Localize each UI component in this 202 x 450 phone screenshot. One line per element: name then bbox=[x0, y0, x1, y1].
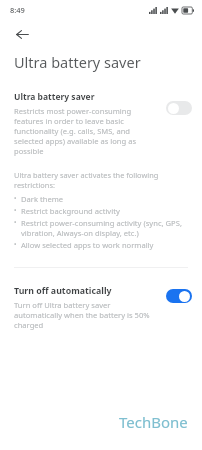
staticText: Turn off automatically bbox=[14, 285, 112, 297]
staticText: Dark theme bbox=[21, 194, 64, 204]
staticText: Ultra battery saver bbox=[14, 91, 95, 103]
staticText: Restrict background activity bbox=[21, 206, 120, 216]
staticText: 8:49 bbox=[10, 5, 25, 15]
staticText: Restricts most power-consuming features … bbox=[14, 106, 160, 156]
staticText: • bbox=[14, 194, 21, 203]
staticText: Ultra battery saver activates the follow… bbox=[14, 170, 190, 190]
button[interactable]: Turn off automatically bbox=[0, 285, 202, 330]
staticText: Ultra battery saver bbox=[14, 52, 141, 72]
staticText: Allow selected apps to work normally bbox=[21, 240, 154, 250]
button[interactable]: Ultra battery saver bbox=[0, 91, 202, 156]
staticText: • bbox=[14, 240, 21, 249]
button[interactable]: Toggle on bbox=[166, 289, 192, 303]
staticText: TechBone bbox=[119, 412, 188, 432]
staticText: Turn off Ultra battery saver automatical… bbox=[14, 300, 160, 330]
staticText: Restrict power-consuming activity (sync,… bbox=[21, 218, 190, 238]
button[interactable]: Toggle off bbox=[166, 101, 192, 115]
staticText: • bbox=[14, 206, 21, 215]
staticText: • bbox=[14, 218, 21, 227]
button[interactable]: Back bbox=[8, 20, 36, 48]
